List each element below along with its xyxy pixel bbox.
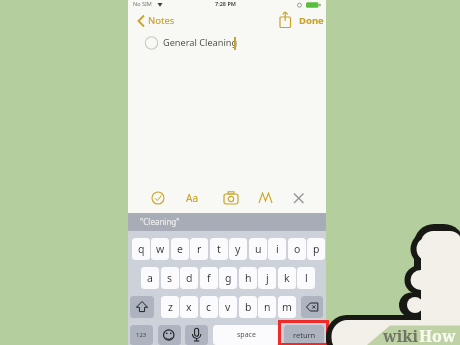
staticText: y <box>235 242 241 256</box>
staticText: o <box>294 242 301 256</box>
staticText: space <box>237 330 256 340</box>
button[interactable] <box>278 320 329 345</box>
button[interactable] <box>301 296 323 318</box>
button[interactable] <box>292 191 306 205</box>
button[interactable]: j <box>258 267 276 289</box>
staticText: u <box>255 242 262 256</box>
staticText: f <box>207 271 211 285</box>
staticText: 7:28 PM <box>215 0 237 7</box>
button[interactable] <box>223 191 239 205</box>
button[interactable]: v <box>219 296 237 318</box>
staticText: d <box>186 271 193 285</box>
staticText: p <box>313 242 320 256</box>
button[interactable]: q <box>132 238 150 260</box>
button[interactable]: return <box>284 325 324 345</box>
staticText: z <box>168 300 173 314</box>
button[interactable]: g <box>219 267 237 289</box>
staticText: w <box>156 242 165 256</box>
staticText: s <box>167 271 173 285</box>
button[interactable]: d <box>180 267 198 289</box>
staticText: x <box>186 300 192 314</box>
button[interactable]: 123 <box>130 325 153 345</box>
button[interactable]: l <box>297 267 315 289</box>
button[interactable]: m <box>278 296 296 318</box>
staticText: c <box>206 300 212 314</box>
staticText: m <box>282 300 292 314</box>
staticText: t <box>217 242 221 256</box>
staticText: wiki <box>383 325 419 345</box>
staticText: Done <box>299 14 324 27</box>
staticText: i <box>276 242 279 256</box>
staticText: Aa <box>186 191 198 205</box>
button[interactable]: space <box>213 325 279 345</box>
button[interactable] <box>158 325 181 345</box>
button[interactable]: t <box>210 238 228 260</box>
staticText: "Cleaning" <box>140 216 180 227</box>
button[interactable]: z <box>161 296 179 318</box>
staticText: n <box>264 300 271 314</box>
staticText: r <box>197 242 202 256</box>
button[interactable] <box>258 191 273 204</box>
button[interactable]: Notes <box>148 14 175 27</box>
button[interactable]: n <box>258 296 276 318</box>
staticText: 123 <box>136 331 147 339</box>
button[interactable]: x <box>180 296 198 318</box>
button[interactable]: u <box>249 238 267 260</box>
staticText: h <box>245 271 252 285</box>
button[interactable]: c <box>200 296 218 318</box>
staticText: j <box>266 271 269 285</box>
button[interactable] <box>185 325 208 345</box>
button[interactable]: Aa <box>186 191 198 205</box>
staticText: b <box>245 300 252 314</box>
button[interactable]: w <box>151 238 169 260</box>
button[interactable]: "Cleaning" <box>128 213 326 231</box>
button[interactable]: h <box>239 267 257 289</box>
button[interactable]: r <box>190 238 208 260</box>
button[interactable]: s <box>161 267 179 289</box>
button[interactable]: e <box>171 238 189 260</box>
button[interactable]: a <box>141 267 159 289</box>
staticText: k <box>284 271 290 285</box>
button[interactable] <box>151 191 165 205</box>
staticText: Notes <box>148 14 175 27</box>
button[interactable]: i <box>268 238 286 260</box>
button[interactable] <box>278 11 292 28</box>
button[interactable]: o <box>288 238 306 260</box>
staticText: g <box>225 271 232 285</box>
button[interactable] <box>130 296 154 318</box>
staticText: No SIM <box>133 0 152 7</box>
staticText: q <box>138 242 145 256</box>
button[interactable]: Done <box>299 14 324 27</box>
staticText: return <box>293 330 316 340</box>
staticText: How <box>419 325 456 345</box>
button[interactable] <box>145 36 159 50</box>
button[interactable]: b <box>239 296 257 318</box>
staticText: l <box>305 271 308 285</box>
button[interactable]: f <box>200 267 218 289</box>
staticText: a <box>147 271 153 285</box>
button[interactable]: y <box>229 238 247 260</box>
staticText: General Cleaning <box>163 36 238 49</box>
staticText: v <box>225 300 231 314</box>
button[interactable]: k <box>278 267 296 289</box>
button[interactable]: p <box>307 238 325 260</box>
staticText: e <box>177 242 183 256</box>
button[interactable] <box>136 13 152 29</box>
